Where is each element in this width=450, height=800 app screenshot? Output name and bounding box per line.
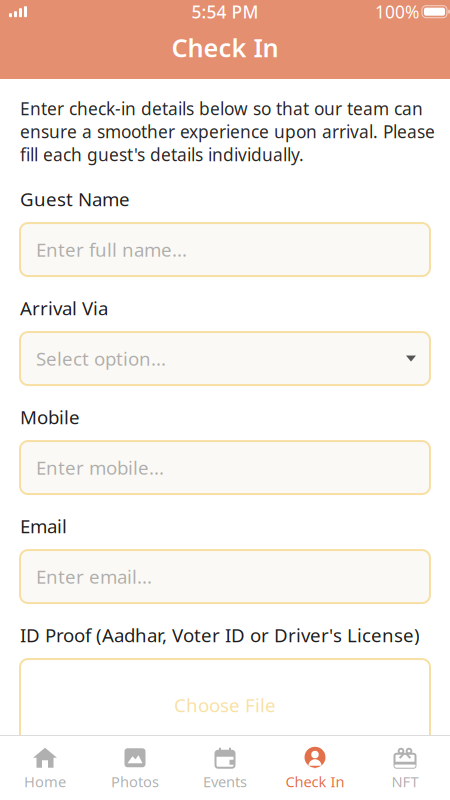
staticText: ensure a smoother experience upon arriva… — [20, 120, 435, 143]
button[interactable]: Choose File — [20, 659, 430, 751]
button[interactable]: Check In — [270, 736, 360, 800]
staticText: Email — [20, 514, 67, 538]
staticText: Mobile — [20, 405, 80, 429]
button[interactable]: Home — [0, 736, 90, 800]
staticText: Enter email... — [36, 564, 152, 589]
staticText: 5:54 PM — [191, 0, 258, 23]
staticText: Home — [24, 772, 66, 791]
staticText: Guest Name — [20, 187, 130, 211]
button[interactable]: Photos — [90, 736, 180, 800]
staticText: Enter check-in details below so that our… — [20, 97, 423, 120]
button[interactable]: NFT — [360, 736, 450, 800]
staticText: Enter full name... — [36, 237, 187, 262]
staticText: Check In — [285, 772, 344, 791]
button[interactable]: Enter email... — [20, 550, 430, 603]
button[interactable]: Enter full name... — [20, 223, 430, 276]
button[interactable]: Select option... — [20, 332, 430, 385]
staticText: Check In — [171, 31, 278, 64]
staticText: Select option... — [36, 346, 166, 371]
staticText: 100% — [375, 0, 419, 23]
staticText: fill each guest's details individually. — [20, 143, 304, 166]
staticText: Enter mobile... — [36, 455, 164, 480]
button[interactable]: Events — [180, 736, 270, 800]
staticText: NFT — [391, 772, 418, 791]
staticText: Arrival Via — [20, 296, 108, 320]
button[interactable]: Enter mobile... — [20, 441, 430, 494]
staticText: ID Proof (Aadhar, Voter ID or Driver's L… — [20, 623, 420, 647]
staticText: Photos — [111, 772, 159, 791]
staticText: Choose File — [174, 693, 276, 717]
staticText: Events — [203, 772, 247, 791]
